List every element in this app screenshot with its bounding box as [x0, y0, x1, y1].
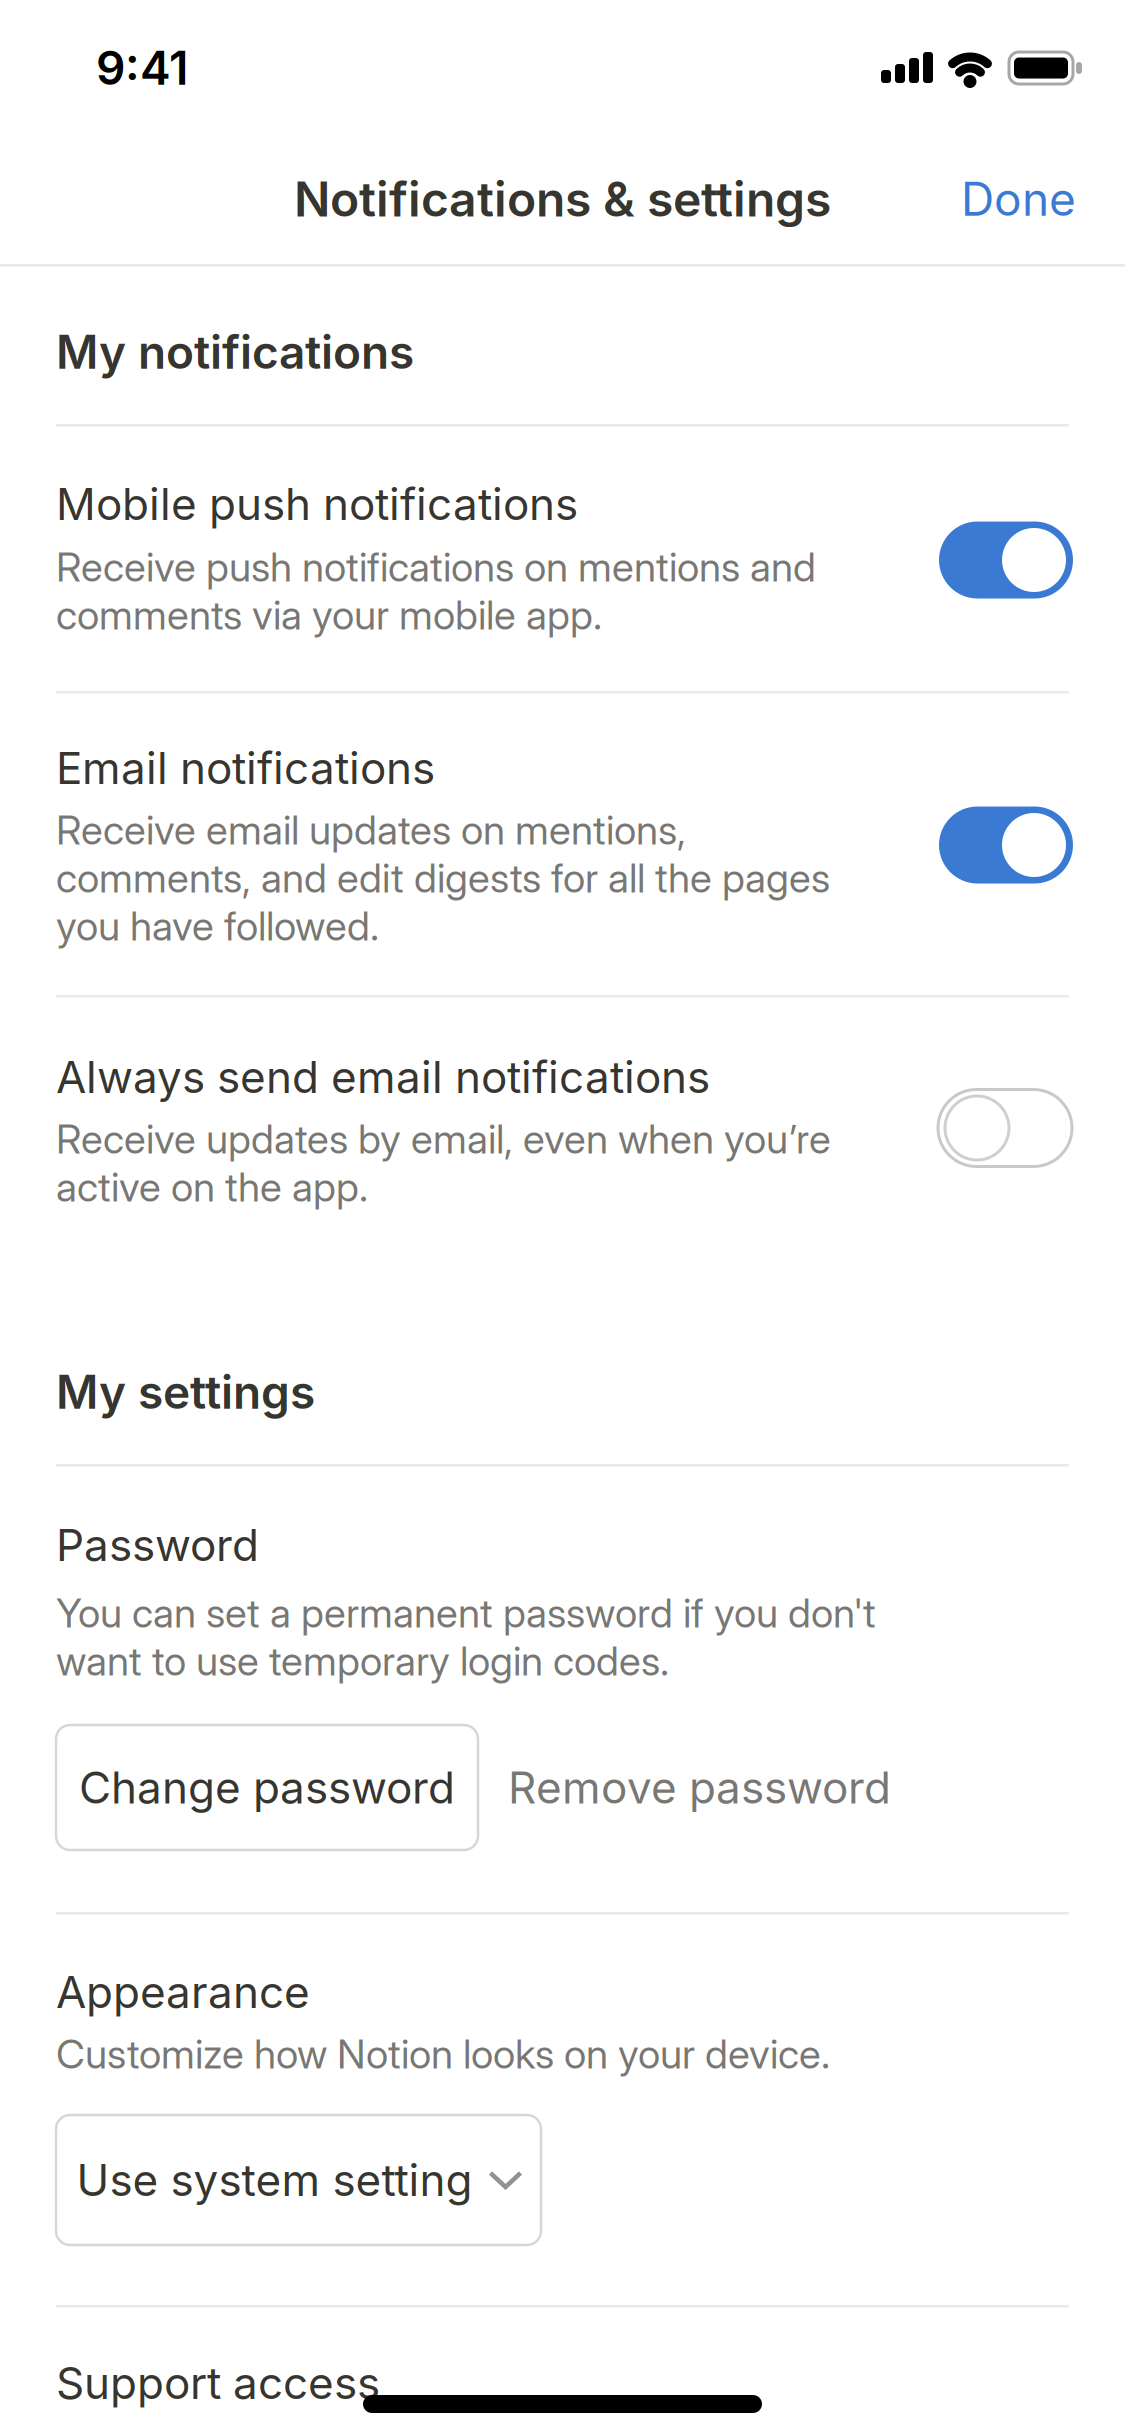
button[interactable]: Done — [856, 154, 1076, 244]
staticText: comments via your mobile app. — [56, 591, 602, 639]
button[interactable]: Email notifications — [939, 806, 1073, 883]
staticText: Notifications & settings — [294, 170, 831, 228]
staticText: Support access — [56, 2356, 380, 2410]
staticText: Receive updates by email, even when you’… — [56, 1115, 831, 1163]
staticText: Customize how Notion looks on your devic… — [56, 2030, 830, 2078]
staticText: My notifications — [56, 324, 414, 380]
staticText: want to use temporary login codes. — [56, 1637, 669, 1685]
staticText: 9:41 — [96, 40, 188, 96]
staticText: Password — [56, 1518, 259, 1572]
staticText: You can set a permanent password if you … — [56, 1589, 876, 1637]
button[interactable]: Mobile push notifications — [939, 521, 1073, 598]
staticText: active on the app. — [56, 1163, 368, 1211]
staticText: Remove password — [508, 1761, 891, 1814]
button[interactable]: Always send email notifications — [938, 1089, 1072, 1166]
staticText: comments, and edit digests for all the p… — [56, 854, 830, 902]
staticText: Appearance — [56, 1965, 310, 2019]
staticText: Receive email updates on mentions, — [56, 806, 686, 854]
button[interactable]: Change password — [56, 1725, 478, 1850]
staticText: Always send email notifications — [56, 1050, 710, 1104]
staticText: you have followed. — [56, 902, 379, 950]
staticText: Change password — [79, 1761, 455, 1814]
staticText: Use system setting — [76, 2153, 472, 2207]
staticText: Email notifications — [56, 741, 435, 795]
button[interactable]: Use system setting — [56, 2115, 541, 2245]
button[interactable]: Remove password — [508, 1725, 891, 1850]
staticText: Receive push notifications on mentions a… — [56, 543, 816, 591]
staticText: Mobile push notifications — [56, 477, 578, 531]
staticText: Done — [961, 171, 1076, 227]
staticText: My settings — [56, 1364, 315, 1420]
